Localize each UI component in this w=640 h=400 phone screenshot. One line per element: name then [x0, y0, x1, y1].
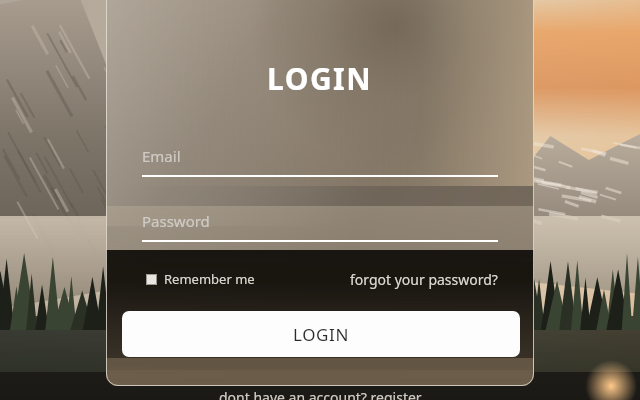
button[interactable]: forgot your password? — [350, 270, 498, 289]
button[interactable]: Email — [142, 146, 498, 181]
staticText: LOGIN — [267, 58, 373, 99]
button[interactable]: Remember me — [146, 270, 259, 288]
staticText: LOGIN — [293, 323, 349, 346]
button[interactable]: dont have an account? register — [219, 388, 422, 400]
staticText: Remember me — [164, 270, 255, 288]
staticText: forgot your password? — [350, 270, 498, 289]
staticText: Email — [142, 146, 181, 166]
staticText: Password — [142, 211, 210, 231]
button[interactable]: LOGIN — [122, 311, 520, 357]
staticText: dont have an account? register — [219, 388, 422, 400]
button[interactable]: Password — [142, 211, 498, 246]
